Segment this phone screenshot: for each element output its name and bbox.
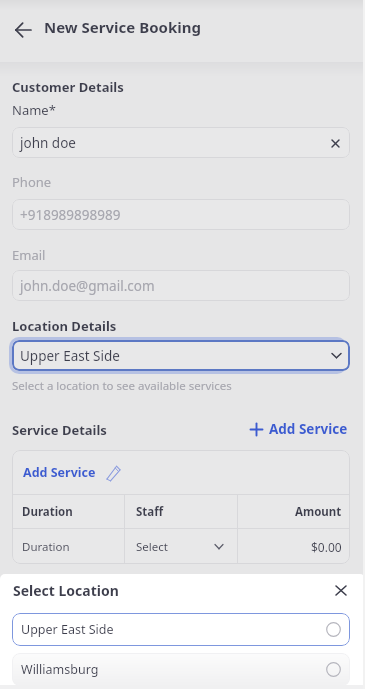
staticText: Williamsburg [21, 661, 99, 678]
button[interactable]: Upper East Side [12, 613, 350, 646]
staticText: Add Service [23, 464, 96, 481]
button[interactable]: Upper East Side [12, 340, 350, 371]
button[interactable]: Close [328, 577, 354, 603]
staticText: Select [136, 539, 168, 555]
button[interactable]: Select [125, 529, 237, 564]
staticText: Duration [22, 504, 73, 520]
staticText: Duration [22, 539, 70, 555]
staticText: Amount [295, 504, 342, 520]
staticText: Select a location to see available servi… [12, 378, 232, 394]
staticText: Select Location [13, 581, 119, 600]
button[interactable]: Add Service [12, 450, 350, 494]
staticText: Staff [136, 504, 164, 520]
staticText: $0.00 [311, 539, 342, 555]
staticText: Add Service [269, 420, 348, 438]
button[interactable]: +918989898989 [12, 199, 350, 230]
button[interactable]: john.doe@gmail.com [12, 270, 350, 301]
button[interactable]: Back [10, 17, 36, 43]
staticText: Phone [12, 173, 52, 191]
staticText: Service Details [12, 421, 107, 439]
staticText: Email [12, 246, 46, 264]
staticText: +918989898989 [20, 206, 121, 224]
button[interactable]: john doe [12, 127, 350, 158]
button[interactable]: Clear name [324, 132, 346, 154]
staticText: New Service Booking [44, 17, 201, 37]
staticText: john.doe@gmail.com [20, 277, 155, 295]
staticText: Upper East Side [21, 621, 114, 638]
button[interactable]: Williamsburg [12, 653, 350, 686]
button[interactable]: Add Service [248, 418, 350, 440]
staticText: Name* [12, 101, 56, 119]
staticText: Customer Details [12, 78, 124, 96]
staticText: john doe [20, 134, 76, 152]
staticText: Location Details [12, 317, 117, 335]
staticText: Upper East Side [20, 347, 120, 365]
